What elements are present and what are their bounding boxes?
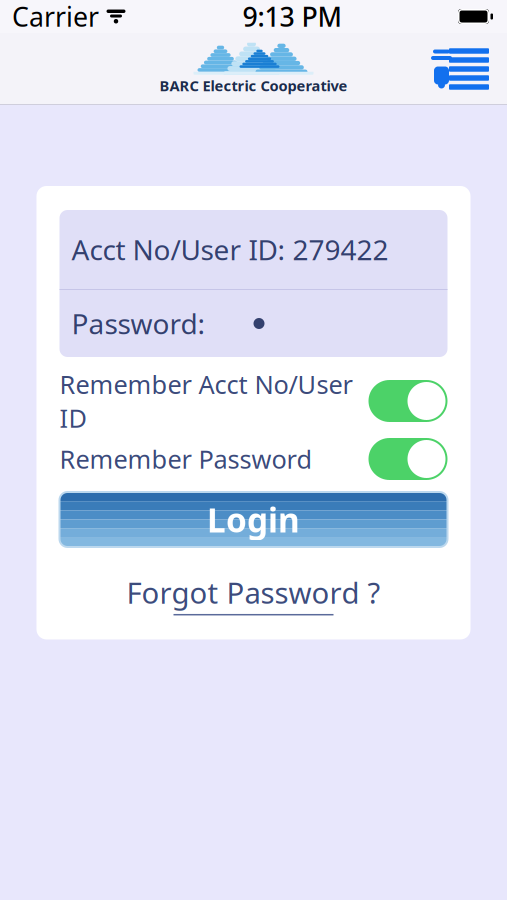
staticText: Password: — [71, 305, 205, 342]
button[interactable]: Forgot Password ? — [116, 569, 390, 619]
button[interactable]: Menu — [428, 43, 490, 95]
staticText: Forgot Password ? — [126, 573, 380, 612]
staticText: Carrier — [12, 0, 99, 34]
staticText: BARC Electric Cooperative — [159, 76, 347, 95]
staticText: Remember Acct No/User ID — [59, 367, 352, 435]
button[interactable]: Remember Password — [59, 437, 447, 481]
button[interactable]: Acct No/User ID: 279422 — [59, 210, 447, 289]
staticText: 9:13 PM — [242, 0, 341, 34]
button[interactable]: Password: — [59, 290, 447, 357]
staticText: Login — [207, 497, 300, 542]
staticText: Acct No/User ID: 279422 — [71, 231, 388, 268]
button[interactable]: Remember Acct No/User ID — [59, 379, 447, 423]
button[interactable]: Login — [59, 492, 447, 547]
staticText: Remember Password — [59, 442, 312, 476]
